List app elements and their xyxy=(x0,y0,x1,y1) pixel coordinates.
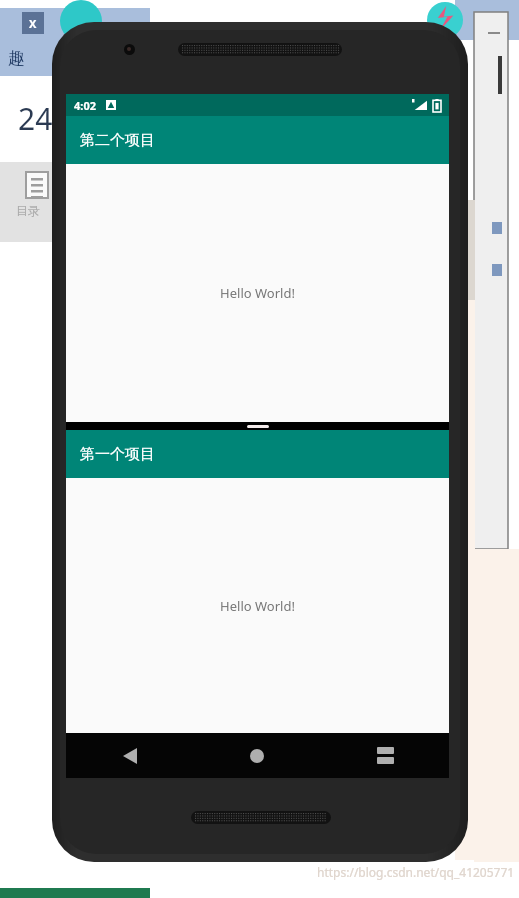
button[interactable]: Back xyxy=(66,733,193,778)
staticText: 4:02 xyxy=(74,98,96,113)
staticText: 目录 xyxy=(16,203,40,218)
staticText: Hello World! xyxy=(220,284,295,302)
staticText: 第一个项目 xyxy=(80,445,155,464)
staticText: Hello World! xyxy=(220,597,295,615)
staticText: 第二个项目 xyxy=(80,131,155,150)
button[interactable]: 第二个项目 xyxy=(66,116,449,164)
staticText: https://blog.csdn.net/qq_41205771 xyxy=(317,864,515,880)
staticText: 24 xyxy=(18,98,53,139)
staticText: X xyxy=(29,16,37,31)
staticText: 趣 xyxy=(8,48,25,69)
button[interactable]: Recent apps xyxy=(321,733,449,778)
button[interactable]: 第一个项目 xyxy=(66,430,449,478)
button[interactable]: Resize panes xyxy=(66,422,449,430)
button[interactable]: Home xyxy=(193,733,321,778)
